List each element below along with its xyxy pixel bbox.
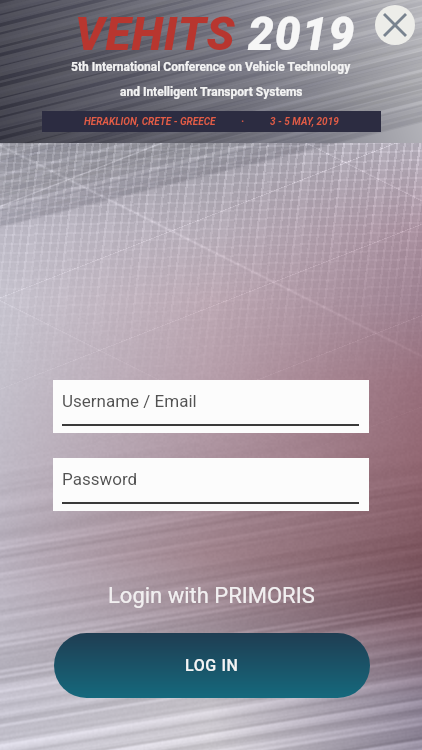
staticText: 5th International Conference on Vehicle … — [71, 60, 351, 74]
button[interactable]: Username / Email — [53, 380, 369, 433]
staticText: Username / Email — [62, 391, 197, 411]
button[interactable]: Login with PRIMORIS — [0, 578, 422, 614]
staticText: 3 - 5 MAY, 2019 — [270, 116, 339, 128]
staticText: Password — [62, 469, 138, 489]
staticText: VEHITS — [75, 7, 236, 61]
staticText: · — [241, 115, 245, 128]
button[interactable]: Close — [375, 5, 415, 45]
staticText: Login with PRIMORIS — [108, 583, 315, 609]
button[interactable]: Password — [53, 458, 369, 511]
staticText: HERAKLION, CRETE - GREECE — [84, 116, 216, 128]
staticText: 2019 — [248, 7, 356, 61]
staticText: and Intelligent Transport Systems — [120, 85, 303, 99]
staticText: LOG IN — [185, 656, 239, 675]
button[interactable]: LOG IN — [54, 633, 370, 698]
